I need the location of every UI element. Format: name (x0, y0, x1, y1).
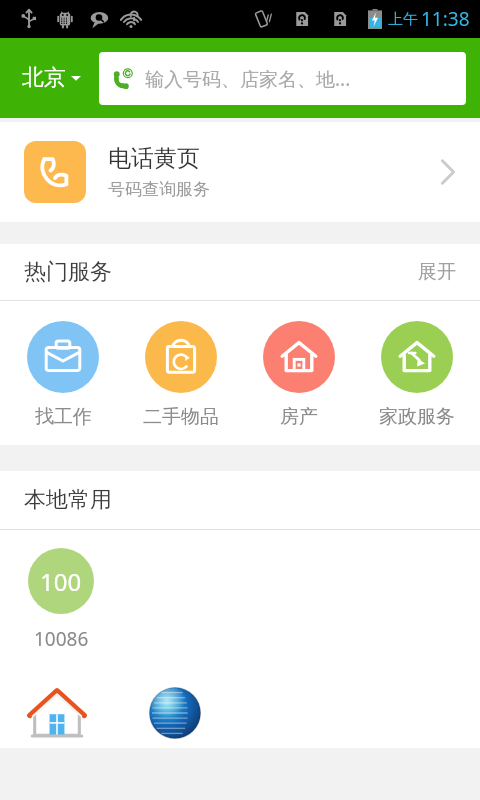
button[interactable]: 100 (22, 548, 100, 652)
button[interactable]: 家政服务 (362, 321, 472, 429)
button[interactable]: 北京 (14, 58, 89, 98)
staticText: 找工作 (35, 405, 92, 429)
staticText: 11:38 (421, 6, 470, 32)
staticText: 家政服务 (379, 405, 455, 429)
button[interactable]: 电话黄页 (0, 122, 480, 222)
button[interactable]: 找工作 (8, 321, 118, 429)
staticText: 热门服务 (24, 258, 112, 286)
button[interactable]: 房产 (244, 321, 354, 429)
button[interactable]: 二手物品 (126, 321, 236, 429)
staticText: 号码查询服务 (108, 179, 210, 200)
button[interactable]: 热门服务 (0, 244, 480, 300)
staticText: 本地常用 (24, 486, 112, 514)
staticText: 北京 (22, 64, 66, 92)
staticText: 上午 (388, 10, 418, 29)
button[interactable]: Home (22, 678, 92, 748)
staticText: 电话黄页 (108, 144, 200, 173)
staticText: 100 (40, 565, 82, 598)
staticText: 展开 (418, 260, 456, 284)
staticText: 二手物品 (143, 405, 219, 429)
staticText: 输入号码、店家名、地... (145, 66, 351, 92)
staticText: 10086 (34, 626, 89, 652)
button[interactable]: 本地常用 (0, 471, 480, 529)
staticText: 房产 (280, 405, 318, 429)
button[interactable]: Browser (140, 678, 210, 748)
button[interactable]: 输入号码、店家名、地... (99, 52, 466, 105)
